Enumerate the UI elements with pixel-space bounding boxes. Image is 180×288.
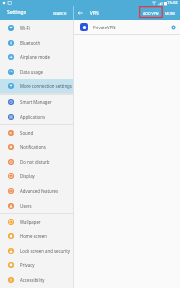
button[interactable]: More connection settings (0, 79, 73, 93)
button[interactable]: Do not disturb (0, 154, 73, 169)
staticText: PrivateVPN (93, 24, 116, 30)
staticText: Airplane mode (20, 54, 50, 60)
button[interactable]: Wallpaper (0, 214, 73, 229)
staticText: Display (20, 173, 35, 179)
staticText: SEARCH (53, 11, 67, 16)
staticText: VPN (90, 10, 99, 16)
staticText: 15:02 (167, 0, 178, 6)
staticText: Notifications (20, 144, 46, 150)
staticText: Bluetooth (20, 40, 41, 46)
button[interactable]: Advanced features (0, 183, 73, 198)
staticText: Data usage (20, 69, 44, 75)
button[interactable]: Bluetooth (0, 35, 73, 50)
button[interactable]: VPN settings (167, 20, 180, 34)
button[interactable]: Sound (0, 125, 73, 140)
button[interactable]: Back (74, 6, 86, 20)
button[interactable]: Wi-Fi (0, 20, 73, 35)
staticText: Lock screen and security (20, 248, 70, 254)
button[interactable]: Data usage (0, 64, 73, 79)
staticText: Advanced features (20, 188, 58, 194)
button[interactable]: Lock screen and security (0, 243, 73, 258)
staticText: MORE (165, 11, 176, 16)
staticText: Wallpaper (20, 219, 41, 225)
staticText: Accessibility (20, 277, 45, 283)
button[interactable]: MORE (161, 6, 180, 20)
button[interactable]: SEARCH (47, 6, 73, 20)
button[interactable]: Display (0, 169, 73, 183)
staticText: Home screen (20, 233, 47, 239)
staticText: Settings (7, 9, 27, 16)
button[interactable]: Airplane mode (0, 50, 73, 64)
button[interactable]: Users (0, 198, 73, 213)
staticText: Users (20, 203, 32, 209)
button[interactable]: Smart Manager (0, 95, 73, 109)
staticText: Wi-Fi (20, 25, 30, 31)
staticText: Sound (20, 130, 34, 136)
button[interactable]: Notifications (0, 140, 73, 154)
button[interactable]: Privacy (0, 258, 73, 272)
staticText: More connection settings (20, 83, 72, 89)
button[interactable]: Home screen (0, 229, 73, 243)
staticText: ADD VPN (143, 11, 159, 16)
staticText: Privacy (20, 262, 35, 268)
staticText: Smart Manager (20, 99, 52, 105)
button[interactable]: Accessibility (0, 272, 73, 287)
button[interactable]: PrivateVPN (74, 20, 180, 34)
button[interactable]: Applications (0, 109, 73, 124)
staticText: Do not disturb (20, 159, 50, 165)
staticText: Applications (20, 114, 45, 120)
button[interactable]: ADD VPN (139, 6, 161, 20)
